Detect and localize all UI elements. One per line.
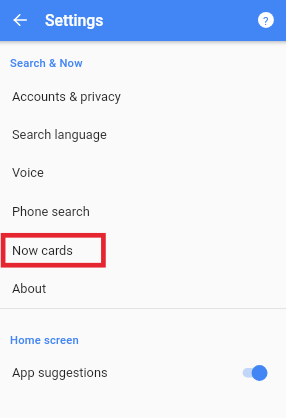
button[interactable]: Now cards: [0, 231, 286, 269]
button[interactable]: Help: [258, 12, 274, 28]
staticText: Voice: [12, 165, 44, 180]
button[interactable]: App suggestions: [0, 353, 286, 391]
button[interactable]: About: [0, 269, 286, 307]
button[interactable]: Navigate up: [8, 8, 32, 32]
staticText: Now cards: [12, 243, 73, 258]
staticText: Phone search: [12, 204, 90, 219]
staticText: Accounts & privacy: [12, 89, 121, 104]
staticText: ?: [263, 14, 269, 28]
button[interactable]: Phone search: [0, 192, 286, 230]
staticText: Search & Now: [10, 57, 83, 70]
staticText: Settings: [45, 11, 104, 30]
button[interactable]: Toggle app suggestions, on: [240, 361, 272, 385]
staticText: App suggestions: [12, 365, 108, 380]
button[interactable]: Search language: [0, 115, 286, 153]
button[interactable]: Voice: [0, 153, 286, 191]
staticText: Search language: [12, 127, 107, 142]
staticText: About: [12, 281, 47, 296]
button[interactable]: Accounts & privacy: [0, 77, 286, 115]
staticText: Home screen: [10, 334, 79, 347]
